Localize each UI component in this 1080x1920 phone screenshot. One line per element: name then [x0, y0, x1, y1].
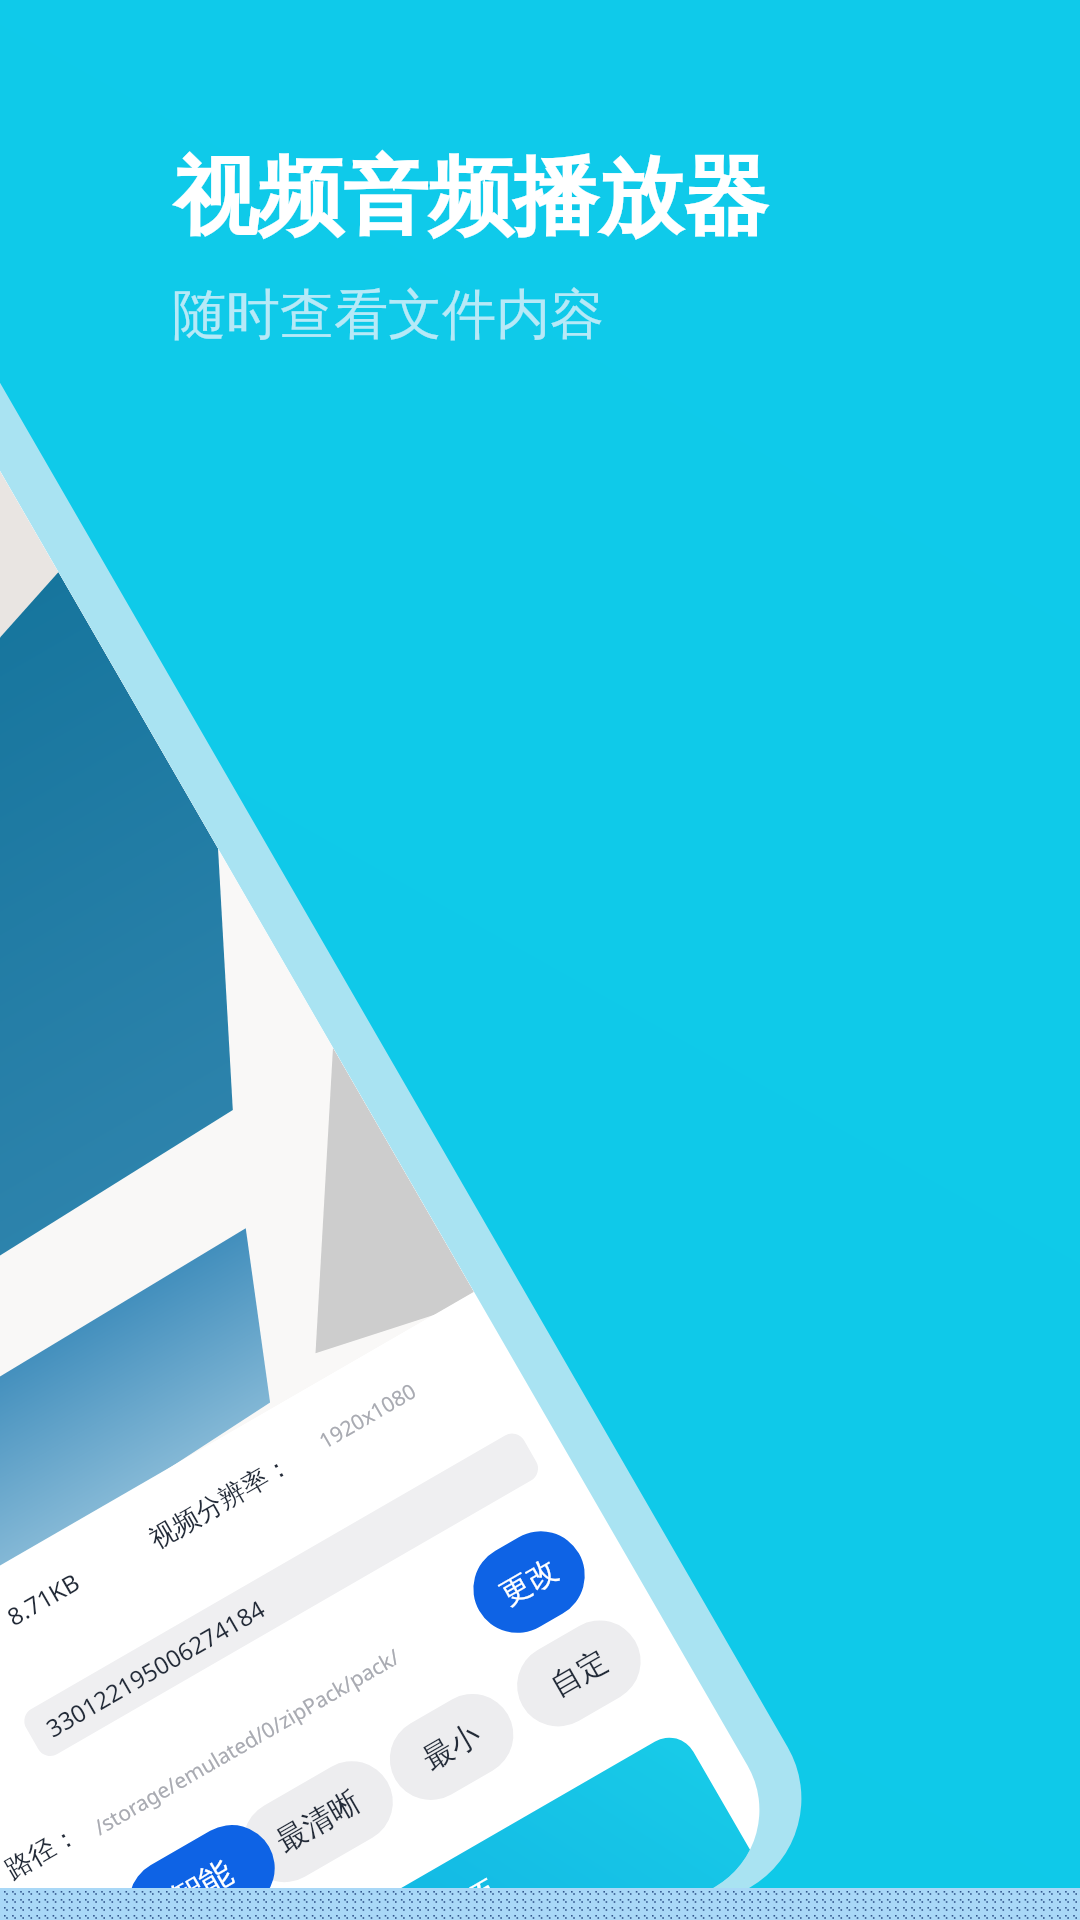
button[interactable]: 视频 [425, 1830, 715, 1920]
button[interactable]: 自定 [517, 1629, 630, 1714]
button[interactable]: 智能 [140, 1860, 290, 1920]
button[interactable]: 更改 [466, 1535, 581, 1627]
button[interactable]: 最清晰 [253, 1777, 383, 1862]
button[interactable]: 最小 [392, 1703, 505, 1788]
